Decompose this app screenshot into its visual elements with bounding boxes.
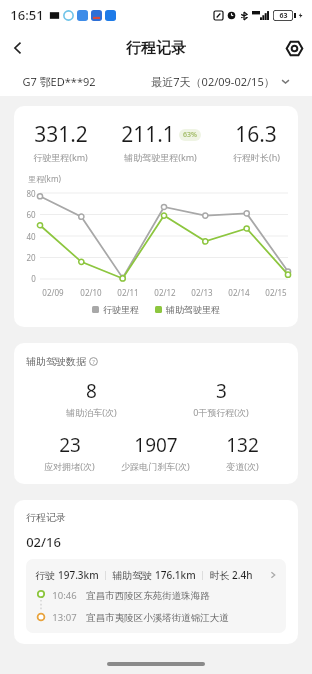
staticText: 最近7天（02/09-02/15） bbox=[151, 74, 275, 89]
staticText: 80 bbox=[26, 188, 36, 199]
staticText: 13:07 bbox=[52, 611, 77, 624]
staticText: 16.3 bbox=[235, 120, 277, 149]
button[interactable]: G7 鄂ED***92 bbox=[22, 74, 96, 89]
staticText: 辅助驾驶数据 bbox=[26, 355, 86, 368]
staticText: 02/16 bbox=[26, 533, 61, 551]
button[interactable]: Settings bbox=[276, 30, 312, 66]
button[interactable]: 最近7天（02/09-02/15） bbox=[151, 74, 290, 89]
staticText: 少踩电门刹车(次) bbox=[121, 460, 190, 472]
staticText: 23 bbox=[59, 432, 81, 458]
staticText: 行驶里程(km) bbox=[33, 151, 88, 163]
staticText: 时长 2.4h bbox=[209, 568, 253, 582]
staticText: 0干预行程(次) bbox=[193, 406, 249, 418]
staticText: 10:46 bbox=[52, 589, 77, 602]
staticText: 3 bbox=[216, 378, 227, 404]
staticText: 63% bbox=[183, 130, 197, 140]
button[interactable]: Back bbox=[0, 30, 36, 66]
staticText: 8 bbox=[86, 378, 97, 404]
staticText: 1907 bbox=[134, 432, 178, 458]
staticText: 211.1 bbox=[121, 120, 175, 149]
staticText: G7 鄂ED***92 bbox=[22, 74, 96, 89]
staticText: 行程时长(h) bbox=[233, 151, 280, 163]
button[interactable]: 行驶 197.3km bbox=[26, 559, 286, 633]
staticText: 02/13 bbox=[191, 287, 213, 298]
staticText: 02/10 bbox=[80, 287, 102, 298]
staticText: 132 bbox=[226, 432, 259, 458]
staticText: 变道(次) bbox=[226, 460, 259, 472]
staticText: 02/09 bbox=[42, 287, 64, 298]
staticText: 20 bbox=[26, 252, 36, 263]
staticText: 辅助泊车(次) bbox=[66, 406, 117, 418]
staticText: 辅助驾驶里程 bbox=[166, 304, 220, 315]
staticText: 16:51 bbox=[10, 6, 44, 24]
staticText: 行驶 197.3km bbox=[35, 568, 99, 582]
staticText: 里程(km) bbox=[28, 173, 61, 184]
staticText: 0 bbox=[31, 273, 36, 284]
staticText: 宜昌市西陵区东苑街道珠海路 bbox=[86, 590, 210, 602]
staticText: 行驶里程 bbox=[103, 304, 139, 315]
staticText: ? bbox=[92, 358, 95, 366]
staticText: 02/15 bbox=[265, 287, 287, 298]
staticText: 02/11 bbox=[117, 287, 139, 298]
staticText: 60 bbox=[26, 209, 36, 220]
staticText: 63 bbox=[279, 11, 288, 21]
staticText: 应对拥堵(次) bbox=[44, 460, 95, 472]
staticText: 02/14 bbox=[228, 287, 250, 298]
staticText: 331.2 bbox=[34, 120, 88, 149]
staticText: 40 bbox=[26, 231, 36, 242]
staticText: 02/12 bbox=[154, 287, 176, 298]
staticText: 宜昌市夷陵区小溪塔街道锦江大道 bbox=[86, 612, 229, 624]
staticText: 辅助驾驶里程(km) bbox=[124, 151, 197, 163]
staticText: 行程记录 bbox=[26, 511, 66, 524]
button[interactable]: ? bbox=[89, 357, 98, 366]
staticText: 辅助驾驶 176.1km bbox=[112, 568, 196, 582]
staticText: 行程记录 bbox=[126, 39, 186, 58]
